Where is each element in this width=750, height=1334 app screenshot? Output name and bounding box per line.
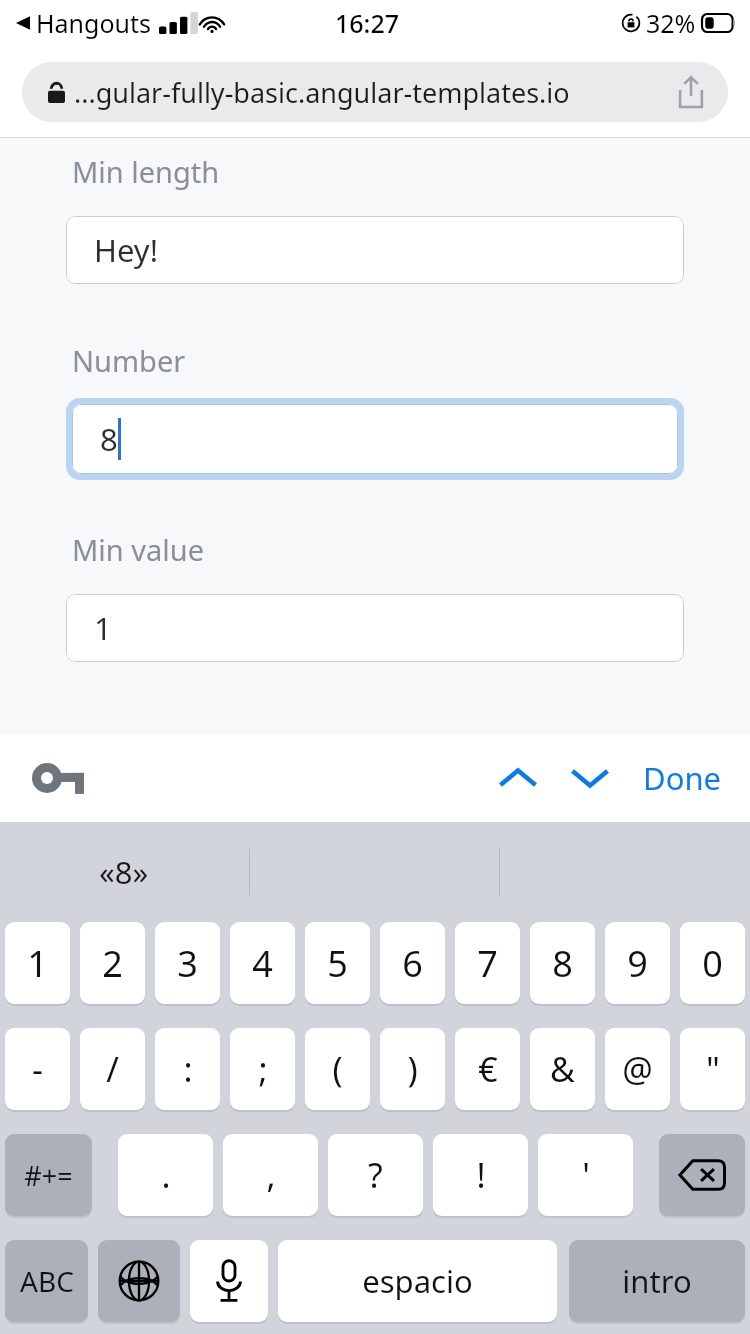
- button[interactable]: &: [530, 1028, 595, 1110]
- button[interactable]: 3: [155, 922, 220, 1004]
- button[interactable]: 0: [680, 922, 745, 1004]
- button[interactable]: Previous field: [487, 750, 549, 806]
- button[interactable]: 1: [5, 922, 70, 1004]
- button[interactable]: 1: [66, 594, 684, 662]
- staticText: &: [550, 1046, 575, 1092]
- button[interactable]: ,: [223, 1134, 318, 1216]
- button[interactable]: 6: [380, 922, 445, 1004]
- button[interactable]: ): [380, 1028, 445, 1110]
- button[interactable]: :: [155, 1028, 220, 1110]
- staticText: (: [332, 1046, 343, 1092]
- staticText: intro: [622, 1260, 692, 1302]
- button[interactable]: Backspace: [659, 1134, 745, 1216]
- staticText: Done: [643, 757, 722, 799]
- staticText: ,: [266, 1152, 276, 1198]
- staticText: ...gular-fully-basic.angular-templates.i…: [74, 74, 570, 111]
- staticText: 7: [477, 939, 498, 988]
- staticText: espacio: [362, 1260, 473, 1302]
- button[interactable]: espacio: [278, 1240, 557, 1322]
- button[interactable]: Passwords: [30, 756, 86, 800]
- button[interactable]: ...gular-fully-basic.angular-templates.i…: [22, 62, 728, 122]
- staticText: .: [161, 1152, 171, 1198]
- button[interactable]: intro: [569, 1240, 745, 1322]
- button[interactable]: /: [80, 1028, 145, 1110]
- staticText: 8: [100, 418, 118, 460]
- staticText: 8: [552, 939, 573, 988]
- staticText: ": [706, 1046, 720, 1092]
- button[interactable]: @: [605, 1028, 670, 1110]
- staticText: Min length: [72, 152, 220, 191]
- staticText: 0: [702, 939, 723, 988]
- button[interactable]: ;: [230, 1028, 295, 1110]
- button[interactable]: Share: [674, 75, 708, 109]
- button[interactable]: Done: [643, 757, 722, 799]
- staticText: Number: [72, 341, 186, 380]
- staticText: Min value: [72, 530, 205, 569]
- staticText: €: [478, 1046, 498, 1092]
- staticText: 9: [627, 939, 648, 988]
- button[interactable]: 9: [605, 922, 670, 1004]
- staticText: ;: [258, 1046, 268, 1092]
- button[interactable]: .: [118, 1134, 213, 1216]
- staticText: -: [32, 1046, 43, 1092]
- staticText: «8»: [99, 851, 149, 893]
- button[interactable]: ': [538, 1134, 633, 1216]
- button[interactable]: ?: [328, 1134, 423, 1216]
- button[interactable]: (: [305, 1028, 370, 1110]
- staticText: 4: [252, 939, 273, 988]
- button[interactable]: 8: [530, 922, 595, 1004]
- button[interactable]: 4: [230, 922, 295, 1004]
- staticText: !: [476, 1152, 486, 1198]
- staticText: Hey!: [94, 229, 158, 271]
- staticText: ': [582, 1152, 590, 1198]
- staticText: 2: [102, 939, 123, 988]
- staticText: Hangouts: [36, 6, 151, 40]
- staticText: 3: [177, 939, 198, 988]
- staticText: :: [183, 1046, 193, 1092]
- button[interactable]: Next field: [559, 750, 621, 806]
- button[interactable]: ABC: [5, 1240, 88, 1322]
- staticText: #+=: [24, 1157, 73, 1194]
- button[interactable]: 7: [455, 922, 520, 1004]
- staticText: 5: [327, 939, 348, 988]
- button[interactable]: 2: [80, 922, 145, 1004]
- staticText: /: [106, 1046, 119, 1092]
- staticText: 16:27: [335, 6, 400, 40]
- button[interactable]: !: [433, 1134, 528, 1216]
- staticText: ?: [368, 1152, 383, 1198]
- staticText: @: [622, 1046, 653, 1092]
- button[interactable]: #+=: [5, 1134, 92, 1216]
- button[interactable]: 8: [72, 404, 678, 474]
- button[interactable]: Dictation: [190, 1240, 268, 1322]
- button[interactable]: Change keyboard language: [98, 1240, 180, 1322]
- button[interactable]: 5: [305, 922, 370, 1004]
- button[interactable]: €: [455, 1028, 520, 1110]
- staticText: 1: [94, 607, 112, 649]
- button[interactable]: -: [5, 1028, 70, 1110]
- button[interactable]: ": [680, 1028, 745, 1110]
- staticText: ): [407, 1046, 418, 1092]
- staticText: 1: [27, 939, 48, 988]
- staticText: 6: [402, 939, 423, 988]
- staticText: ABC: [20, 1262, 74, 1300]
- staticText: 32%: [646, 6, 696, 40]
- button[interactable]: Hey!: [66, 216, 684, 284]
